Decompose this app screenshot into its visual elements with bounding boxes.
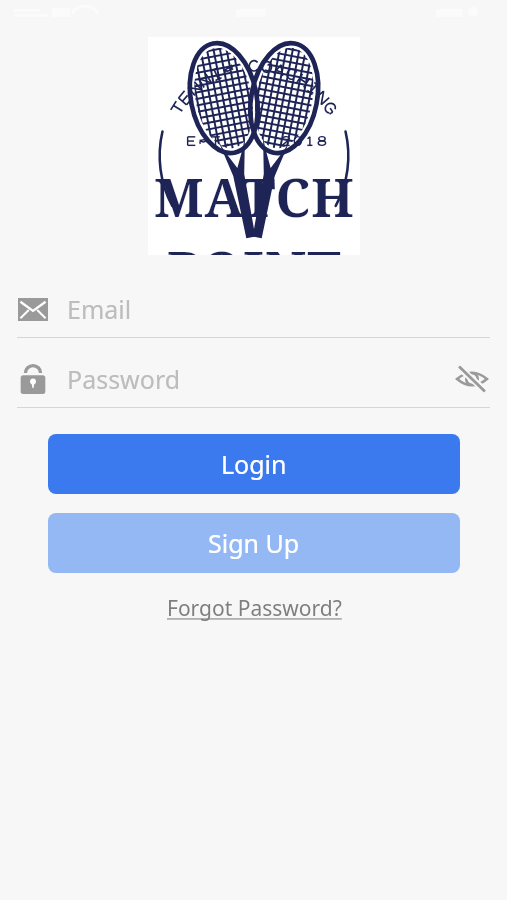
- staticText: Sign Up: [208, 526, 300, 560]
- staticText: Login: [221, 447, 287, 481]
- button[interactable]: Login: [48, 434, 460, 494]
- button[interactable]: Show password: [454, 361, 490, 397]
- button[interactable]: Sign Up: [48, 513, 460, 573]
- staticText: Forgot Password?: [167, 594, 342, 623]
- staticText: MATCH: [154, 161, 355, 232]
- staticText: Email: [67, 292, 132, 326]
- button[interactable]: Email: [0, 281, 507, 338]
- staticText: POINT: [167, 234, 342, 255]
- button[interactable]: Forgot Password?: [161, 592, 348, 625]
- button[interactable]: Password: [0, 351, 507, 408]
- staticText: Password: [67, 362, 181, 396]
